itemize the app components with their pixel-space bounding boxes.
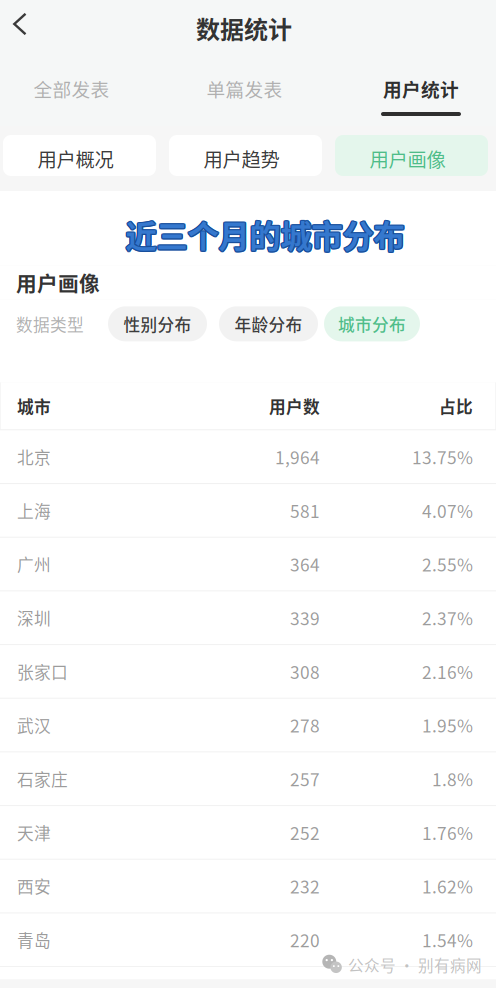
staticText: 张家口 [17, 659, 68, 683]
staticText: 232 [290, 873, 320, 899]
staticText: 近三个月的城市分布 [126, 213, 405, 258]
staticText: 青岛 [17, 928, 51, 952]
staticText: 364 [290, 551, 320, 577]
button[interactable]: Back [0, 3, 40, 53]
staticText: 278 [290, 712, 320, 738]
button[interactable]: 性别分布 [108, 306, 207, 341]
staticText: 数据类型 [16, 312, 84, 336]
staticText: 308 [290, 659, 320, 684]
staticText: 近三个月的城市分布 [125, 211, 404, 256]
staticText: 1.62% [422, 873, 473, 899]
staticText: 用户画像 [369, 144, 445, 172]
staticText: 全部发表 [33, 75, 109, 102]
staticText: 西安 [17, 874, 51, 898]
staticText: 用户数 [269, 394, 320, 418]
staticText: 单篇发表 [206, 75, 282, 102]
staticText: 2.55% [422, 551, 473, 577]
button[interactable]: 用户概况 [3, 135, 156, 176]
staticText: 581 [290, 498, 320, 523]
staticText: 339 [290, 605, 320, 630]
button[interactable]: 年龄分布 [219, 306, 318, 341]
staticText: 天津 [17, 820, 51, 844]
button[interactable]: 用户画像 [335, 135, 488, 176]
staticText: 近三个月的城市分布 [126, 211, 405, 256]
staticText: 城市 [17, 394, 51, 418]
staticText: 北京 [17, 445, 51, 469]
staticText: 上海 [17, 498, 51, 522]
staticText: 13.75% [412, 444, 473, 469]
staticText: 近三个月的城市分布 [125, 213, 404, 258]
staticText: 2.16% [422, 659, 473, 684]
button[interactable]: 城市分布 [324, 306, 420, 341]
staticText: 用户概况 [37, 144, 113, 172]
staticText: 用户趋势 [203, 144, 279, 172]
staticText: 近三个月的城市分布 [124, 212, 403, 257]
staticText: 石家庄 [17, 767, 68, 791]
staticText: 数据统计 [196, 11, 292, 45]
staticText: 1.95% [422, 712, 473, 738]
button[interactable]: 全部发表 [0, 56, 143, 126]
staticText: 广州 [17, 552, 51, 576]
staticText: 2.37% [422, 605, 473, 630]
staticText: 占比 [439, 394, 473, 418]
staticText: 4.07% [422, 498, 473, 523]
staticText: 深圳 [17, 606, 51, 630]
staticText: 1.54% [422, 927, 473, 952]
staticText: 252 [290, 820, 320, 845]
staticText: 近三个月的城市分布 [125, 211, 404, 256]
staticText: 1.8% [432, 766, 473, 791]
staticText: 用户画像 [16, 267, 100, 297]
staticText: 年龄分布 [234, 312, 302, 336]
staticText: 1.76% [422, 820, 473, 845]
button[interactable]: 用户统计 [346, 56, 496, 126]
staticText: 近三个月的城市分布 [125, 213, 404, 259]
staticText: 257 [290, 766, 320, 791]
button[interactable]: 用户趋势 [169, 135, 322, 176]
staticText: 近三个月的城市分布 [125, 212, 404, 257]
staticText: 220 [290, 927, 320, 952]
button[interactable]: 单篇发表 [143, 56, 346, 126]
staticText: 近三个月的城市分布 [127, 212, 406, 257]
staticText: 城市分布 [338, 312, 406, 336]
staticText: 公众号 · 别有病网 [348, 953, 482, 976]
staticText: 性别分布 [123, 312, 191, 336]
staticText: 武汉 [17, 713, 51, 737]
staticText: 1,964 [275, 444, 320, 469]
staticText: 用户统计 [383, 75, 459, 102]
